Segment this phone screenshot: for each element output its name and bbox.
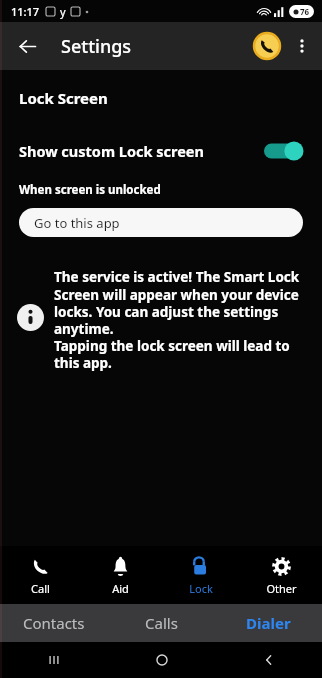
staticText: y xyxy=(60,4,66,19)
staticText: Contacts xyxy=(23,613,85,633)
staticText: Settings xyxy=(61,34,132,59)
staticText: Call xyxy=(31,581,50,596)
button[interactable]: Back xyxy=(8,27,46,65)
button[interactable]: More options xyxy=(286,30,318,62)
button[interactable]: Lock xyxy=(160,546,241,604)
staticText: The service is active! The Smart Lock Sc… xyxy=(54,268,300,372)
staticText: 76 xyxy=(300,6,310,17)
staticText: Dialer xyxy=(246,613,291,633)
button[interactable]: Recents xyxy=(0,642,108,678)
button[interactable]: Back xyxy=(215,642,322,678)
button[interactable]: Contacts xyxy=(0,604,108,642)
staticText: Other xyxy=(266,581,297,596)
button[interactable]: Call xyxy=(250,29,284,63)
button[interactable]: Home xyxy=(108,642,215,678)
staticText: Lock xyxy=(189,581,213,596)
staticText: Calls xyxy=(145,613,178,633)
staticText: Show custom Lock screen xyxy=(19,141,264,161)
button[interactable]: Aid xyxy=(80,546,160,604)
button[interactable]: Calls xyxy=(108,604,215,642)
staticText: Lock Screen xyxy=(19,88,108,108)
staticText: When screen is unlocked xyxy=(19,182,161,198)
button[interactable]: Dialer xyxy=(215,604,322,642)
button[interactable]: Show custom Lock screen xyxy=(0,134,322,168)
staticText: Go to this app xyxy=(34,214,120,232)
button[interactable]: Other xyxy=(241,546,322,604)
button[interactable]: Go to this app xyxy=(19,208,303,237)
staticText: 11:17 xyxy=(11,4,40,19)
staticText: Aid xyxy=(112,581,129,596)
button[interactable]: Call xyxy=(0,546,80,604)
